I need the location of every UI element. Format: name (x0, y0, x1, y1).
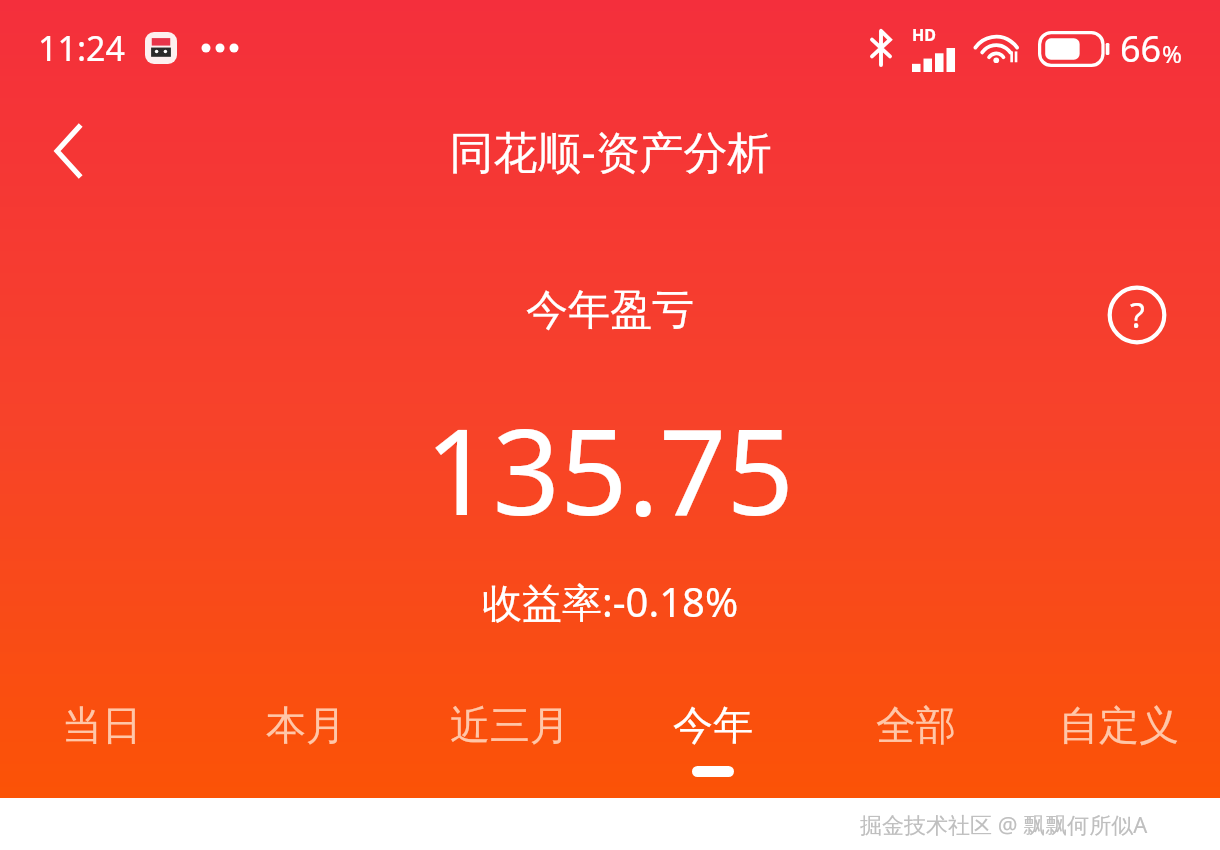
button[interactable]: Back (26, 109, 110, 193)
staticText: 11:24 (38, 25, 125, 71)
staticText: 自定义 (1059, 700, 1179, 750)
button[interactable]: Help (1100, 278, 1174, 352)
staticText: 今年盈亏 (526, 284, 694, 337)
button[interactable]: 本月 (204, 686, 408, 796)
staticText: 收益率:-0.18% (482, 574, 739, 629)
staticText: 近三月 (450, 700, 570, 750)
staticText: 本月 (266, 700, 346, 750)
staticText: 掘金技术社区 @ 飘飘何所似A (860, 809, 1148, 839)
button[interactable]: 当日 (0, 686, 204, 796)
staticText: % (1162, 37, 1182, 70)
staticText: HD (912, 24, 936, 46)
staticText: 全部 (876, 700, 956, 750)
button[interactable]: 近三月 (408, 686, 611, 796)
button[interactable]: 全部 (814, 686, 1017, 796)
staticText: 66 (1120, 24, 1162, 73)
staticText: ? (1130, 292, 1145, 338)
button[interactable]: 今年 (611, 686, 814, 796)
staticText: 同花顺-资产分析 (449, 121, 772, 181)
button[interactable]: 自定义 (1017, 686, 1220, 796)
staticText: 135.75 (425, 389, 795, 550)
staticText: 当日 (62, 700, 142, 750)
staticText: 今年 (673, 700, 753, 750)
